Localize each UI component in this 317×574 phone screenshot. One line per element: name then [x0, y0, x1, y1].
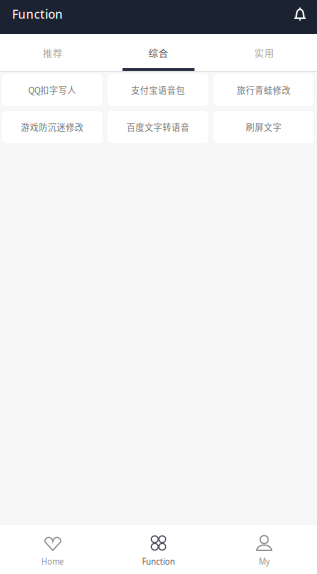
button[interactable]: Home: [0, 525, 106, 574]
staticText: Function: [142, 556, 175, 567]
staticText: 推荐: [43, 45, 63, 59]
button[interactable]: My: [211, 525, 317, 574]
button[interactable]: QQ扣字写人: [2, 74, 103, 106]
staticText: Function: [12, 6, 63, 22]
staticText: 实用: [254, 45, 274, 59]
button[interactable]: 支付宝语音包: [108, 74, 208, 106]
staticText: 支付宝语音包: [131, 84, 185, 96]
button[interactable]: 刷屏文字: [213, 111, 314, 143]
button[interactable]: 游戏防沉迷修改: [2, 111, 103, 143]
button[interactable]: 推荐: [0, 34, 106, 71]
staticText: 旅行青蛙修改: [237, 84, 291, 96]
staticText: 游戏防沉迷修改: [21, 121, 84, 133]
button[interactable]: Function: [106, 525, 211, 574]
staticText: Home: [41, 556, 64, 567]
button[interactable]: 实用: [211, 34, 317, 71]
staticText: QQ扣字写人: [28, 84, 76, 96]
staticText: 百度文字转语音: [126, 121, 189, 133]
staticText: 刷屏文字: [246, 121, 282, 133]
button[interactable]: 综合: [106, 34, 211, 71]
button[interactable]: 百度文字转语音: [108, 111, 208, 143]
button[interactable]: Notifications: [289, 3, 311, 25]
button[interactable]: 旅行青蛙修改: [213, 74, 314, 106]
staticText: 综合: [148, 45, 168, 59]
staticText: My: [259, 556, 270, 567]
